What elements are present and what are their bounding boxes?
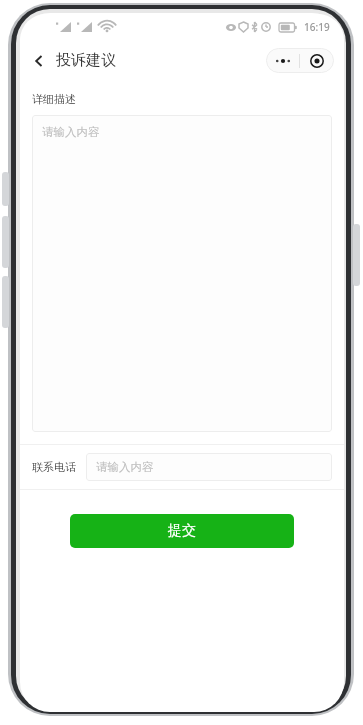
button[interactable]: More [266,58,299,64]
staticText: 联系电话 [32,460,76,474]
button[interactable]: Close [300,54,334,68]
staticText: 详细描述 [32,92,76,106]
other: Back [32,54,46,68]
button[interactable]: Back [26,47,122,74]
button[interactable]: 联系电话 [20,445,344,489]
staticText: 投诉建议 [56,51,116,70]
staticText: 请输入内容 [42,125,100,139]
staticText: 提交 [168,522,196,540]
staticText: 请输入内容 [96,460,154,474]
staticText: 16:19 [304,20,330,34]
button[interactable]: 提交 [70,514,294,548]
